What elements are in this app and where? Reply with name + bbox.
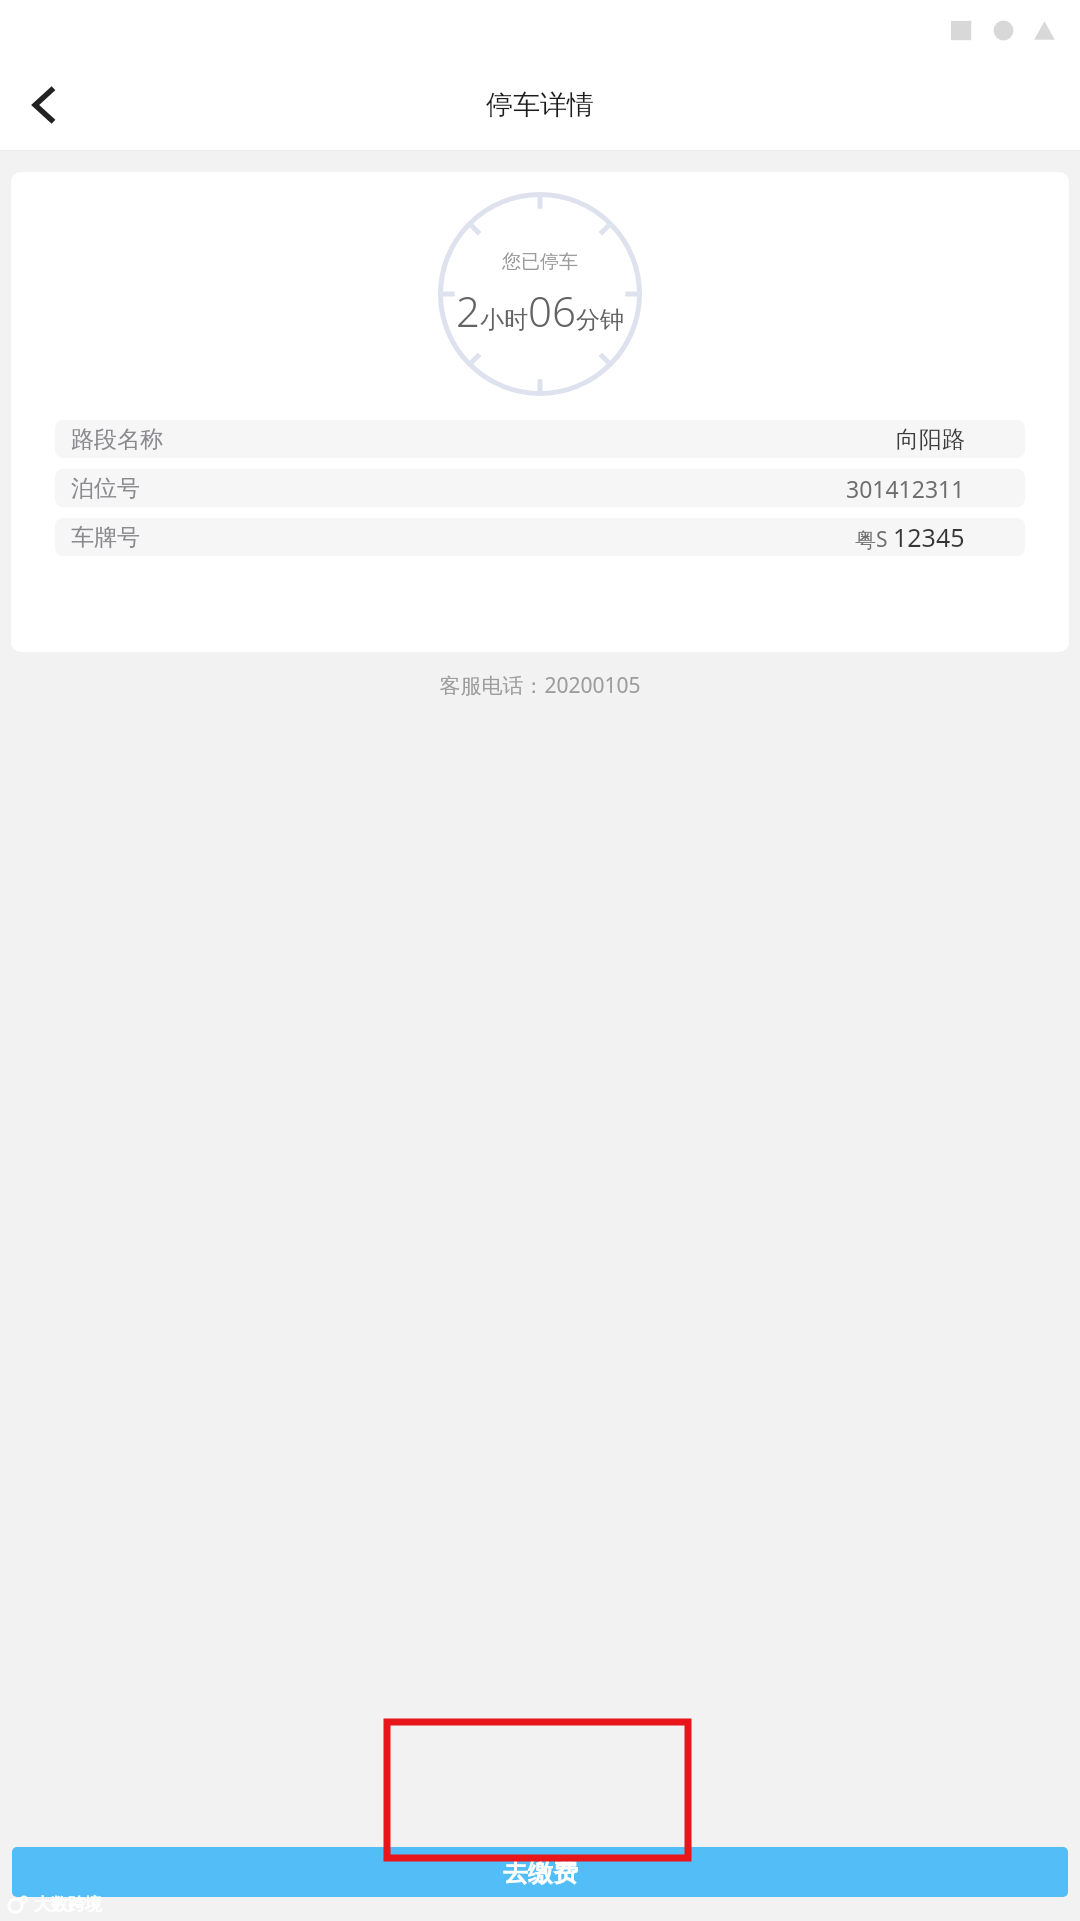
button[interactable]: 车牌号	[55, 518, 1025, 556]
staticText: 小时	[480, 305, 528, 335]
staticText: 301412311	[846, 473, 965, 504]
button[interactable]: Back	[0, 61, 88, 149]
staticText: 向阳路	[896, 425, 965, 454]
staticText: 路段名称	[71, 425, 163, 454]
staticText: 12345	[893, 520, 965, 554]
staticText: 停车详情	[486, 88, 594, 122]
staticText: 泊位号	[71, 474, 140, 503]
staticText: 去缴费	[503, 1857, 578, 1888]
staticText: 粤S	[855, 525, 888, 554]
staticText: 车牌号	[71, 523, 140, 552]
staticText: 客服电话：20200105	[0, 671, 1080, 700]
staticText: 2	[456, 282, 480, 339]
staticText: 分钟	[576, 305, 624, 335]
staticText: 您已停车	[502, 250, 578, 274]
staticText: 06	[528, 282, 576, 339]
staticText: 大数跨境	[34, 1894, 102, 1915]
button[interactable]: 路段名称	[55, 420, 1025, 458]
button[interactable]: 泊位号	[55, 469, 1025, 507]
button[interactable]: 去缴费	[12, 1847, 1068, 1897]
